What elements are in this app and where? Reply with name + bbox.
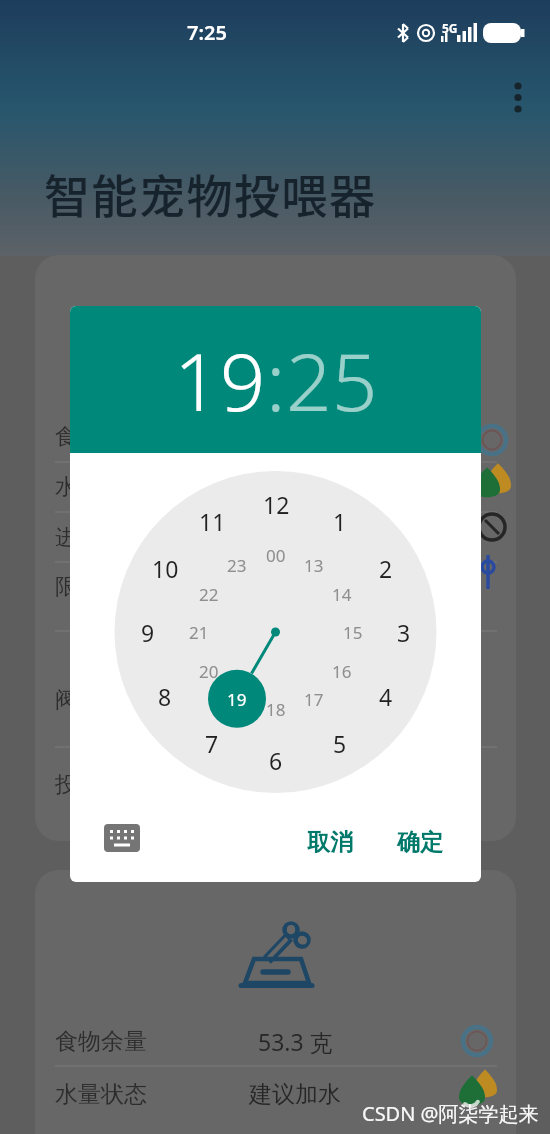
staticText: 23 bbox=[227, 554, 247, 577]
staticText: 食物重量 bbox=[55, 423, 143, 451]
staticText: 1 bbox=[333, 506, 347, 536]
button[interactable]: 确定 bbox=[375, 822, 465, 862]
button[interactable]: 取消 bbox=[285, 822, 375, 862]
staticText: 阀门控制 bbox=[55, 686, 143, 714]
staticText: 15 bbox=[343, 621, 363, 644]
staticText: 19 bbox=[227, 688, 247, 711]
staticText: 2 bbox=[379, 553, 393, 583]
staticText: 5G bbox=[442, 20, 458, 36]
button[interactable] bbox=[505, 75, 531, 121]
staticText: 22 bbox=[199, 583, 219, 606]
staticText: 53.3 克 bbox=[258, 1026, 333, 1057]
staticText: 00 bbox=[266, 544, 286, 567]
staticText: 7 bbox=[205, 728, 219, 758]
staticText: 7:25 bbox=[187, 19, 227, 46]
staticText: 16 bbox=[332, 660, 352, 683]
staticText: 12 bbox=[263, 489, 290, 519]
staticText: 21 bbox=[189, 621, 209, 644]
staticText: 智能宠物投喂器 bbox=[44, 160, 377, 224]
staticText: 3 bbox=[397, 617, 411, 647]
staticText: 13 bbox=[304, 554, 324, 577]
staticText: 25 bbox=[286, 325, 378, 434]
staticText: 18 bbox=[266, 698, 286, 721]
staticText: 8 bbox=[158, 681, 172, 711]
staticText: : bbox=[266, 325, 286, 434]
staticText: 水量状态 bbox=[55, 1080, 147, 1109]
staticText: CSDN @阿柒学起来 bbox=[362, 1100, 539, 1127]
staticText: 建议加水 bbox=[249, 1080, 341, 1109]
staticText: 确定 bbox=[397, 828, 443, 857]
staticText: 14 bbox=[332, 583, 352, 606]
button[interactable] bbox=[104, 824, 142, 854]
staticText: 4 bbox=[379, 681, 393, 711]
staticText: 限时进食 bbox=[55, 573, 143, 601]
staticText: 5 bbox=[333, 728, 347, 758]
staticText: 17 bbox=[304, 688, 324, 711]
staticText: 水量控制 bbox=[55, 473, 143, 501]
staticText: 6 bbox=[269, 745, 283, 775]
staticText: 投喂计划 bbox=[55, 771, 143, 799]
staticText: 取消 bbox=[307, 828, 353, 857]
staticText: 19 bbox=[174, 325, 266, 434]
staticText: 进食时间 bbox=[55, 524, 143, 552]
staticText: 11 bbox=[199, 506, 226, 536]
staticText: 9 bbox=[141, 617, 155, 647]
staticText: 20 bbox=[199, 660, 219, 683]
staticText: 10 bbox=[152, 553, 179, 583]
staticText: 食物余量 bbox=[55, 1027, 147, 1056]
